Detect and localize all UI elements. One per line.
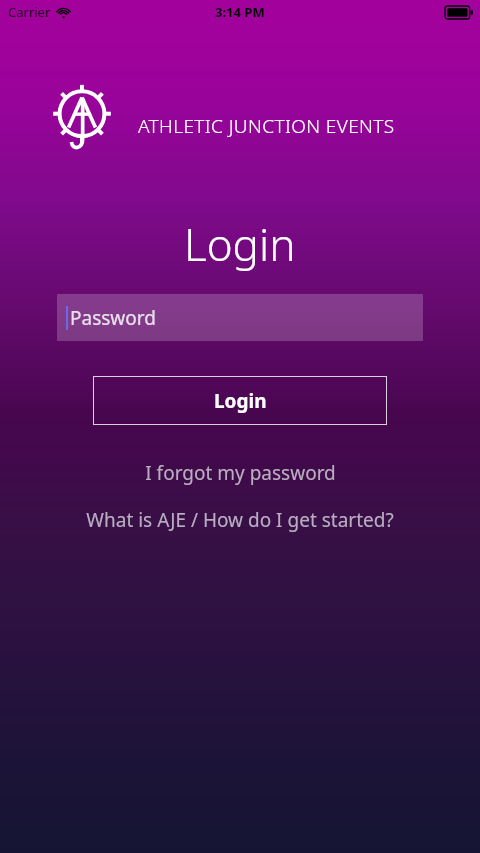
- staticText: Login: [214, 388, 267, 414]
- staticText: What is AJE / How do I get started?: [86, 507, 394, 533]
- staticText: I forgot my password: [145, 460, 336, 486]
- staticText: ATHLETIC JUNCTION EVENTS: [138, 113, 395, 139]
- staticText: Carrier: [8, 3, 51, 21]
- staticText: Password: [70, 305, 156, 331]
- button[interactable]: Login: [93, 376, 387, 425]
- staticText: 3:14 PM: [215, 3, 265, 21]
- button[interactable]: I forgot my password: [0, 454, 480, 492]
- button[interactable]: Password: [57, 294, 423, 341]
- button[interactable]: What is AJE / How do I get started?: [0, 501, 480, 539]
- other: Athletic Junction Events logo: [54, 86, 110, 166]
- staticText: Login: [184, 214, 296, 274]
